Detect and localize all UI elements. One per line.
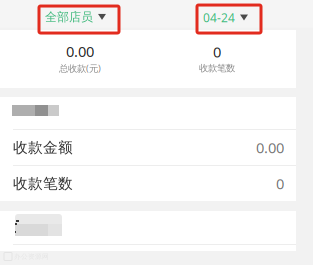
button[interactable]: 全部店员 [39,2,112,31]
button[interactable]: 收款金额 [0,130,296,165]
staticText: 0.00 [256,138,284,157]
staticText: 0.00 [66,42,94,61]
staticText: 收款笔数 [199,62,235,74]
staticText: 收款金额 [13,138,73,156]
button[interactable]: 04-24 [197,2,254,32]
staticText: 收款笔数 [13,174,73,192]
staticText: 总收款(元) [59,62,101,74]
button[interactable]: 收款笔数 [0,166,296,201]
staticText: 0 [213,42,221,61]
staticText: 04-24 [203,9,235,25]
staticText: 0 [276,174,284,193]
staticText: 全部店员 [45,9,93,24]
